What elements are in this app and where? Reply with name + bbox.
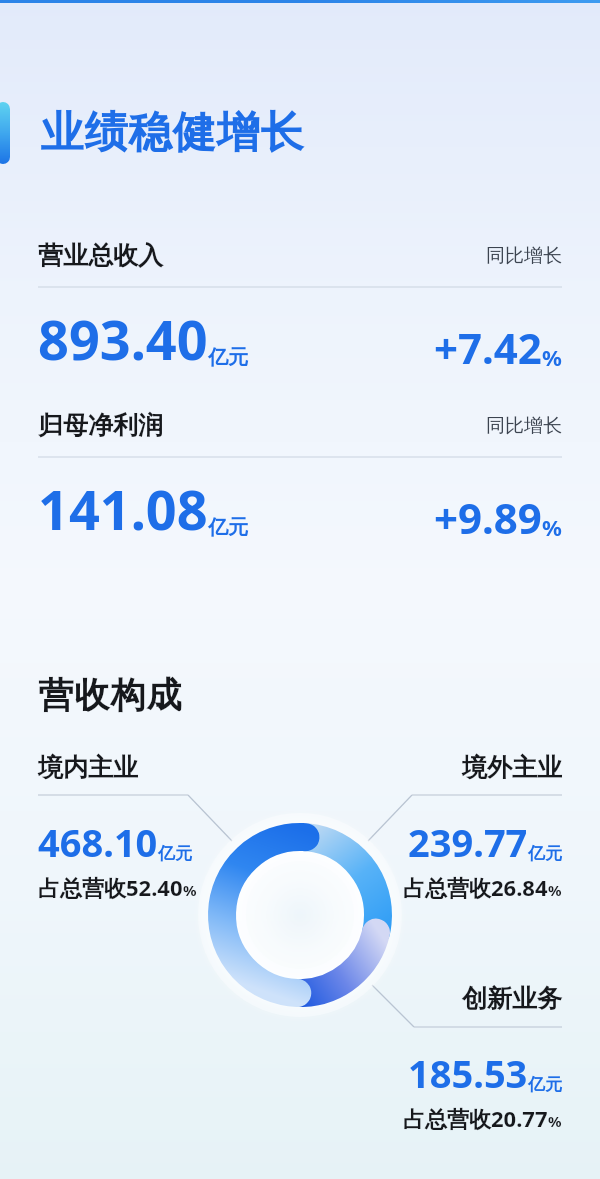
staticText: +7.42 <box>434 319 542 376</box>
staticText: 归母净利润 <box>38 410 163 441</box>
staticText: 亿元 <box>208 515 248 540</box>
staticText: 占总营收52.40 <box>38 872 183 902</box>
staticText: 亿元 <box>528 843 562 864</box>
staticText: 创新业务 <box>462 983 562 1014</box>
staticText: 营业总收入 <box>38 240 163 271</box>
staticText: % <box>542 512 562 542</box>
button[interactable]: 业绩稳健增长 <box>0 102 600 164</box>
staticText: 亿元 <box>158 843 192 864</box>
staticText: 占总营收26.84 <box>403 872 548 902</box>
staticText: 239.77 <box>408 816 528 868</box>
staticText: % <box>183 880 197 900</box>
button[interactable]: 创新业务 <box>0 983 562 1133</box>
staticText: 185.53 <box>408 1047 528 1099</box>
button[interactable]: 营业总收入 <box>0 240 600 370</box>
staticText: 同比增长 <box>486 414 562 438</box>
staticText: 境外主业 <box>462 752 562 783</box>
staticText: +9.89 <box>434 489 542 546</box>
staticText: 亿元 <box>208 345 248 370</box>
staticText: 营收构成 <box>38 673 182 717</box>
staticText: 468.10 <box>38 816 158 868</box>
staticText: 亿元 <box>528 1074 562 1095</box>
staticText: % <box>548 1111 562 1131</box>
button[interactable]: 境内主业 <box>38 752 197 902</box>
button[interactable]: 境外主业 <box>0 752 562 902</box>
staticText: 业绩稳健增长 <box>40 106 304 160</box>
staticText: 141.08 <box>38 472 208 546</box>
button[interactable]: 归母净利润 <box>0 410 600 540</box>
staticText: 同比增长 <box>486 244 562 268</box>
staticText: 893.40 <box>38 302 208 376</box>
staticText: % <box>542 342 562 372</box>
staticText: % <box>548 880 562 900</box>
staticText: 境内主业 <box>38 752 138 783</box>
staticText: 占总营收20.77 <box>403 1103 548 1133</box>
